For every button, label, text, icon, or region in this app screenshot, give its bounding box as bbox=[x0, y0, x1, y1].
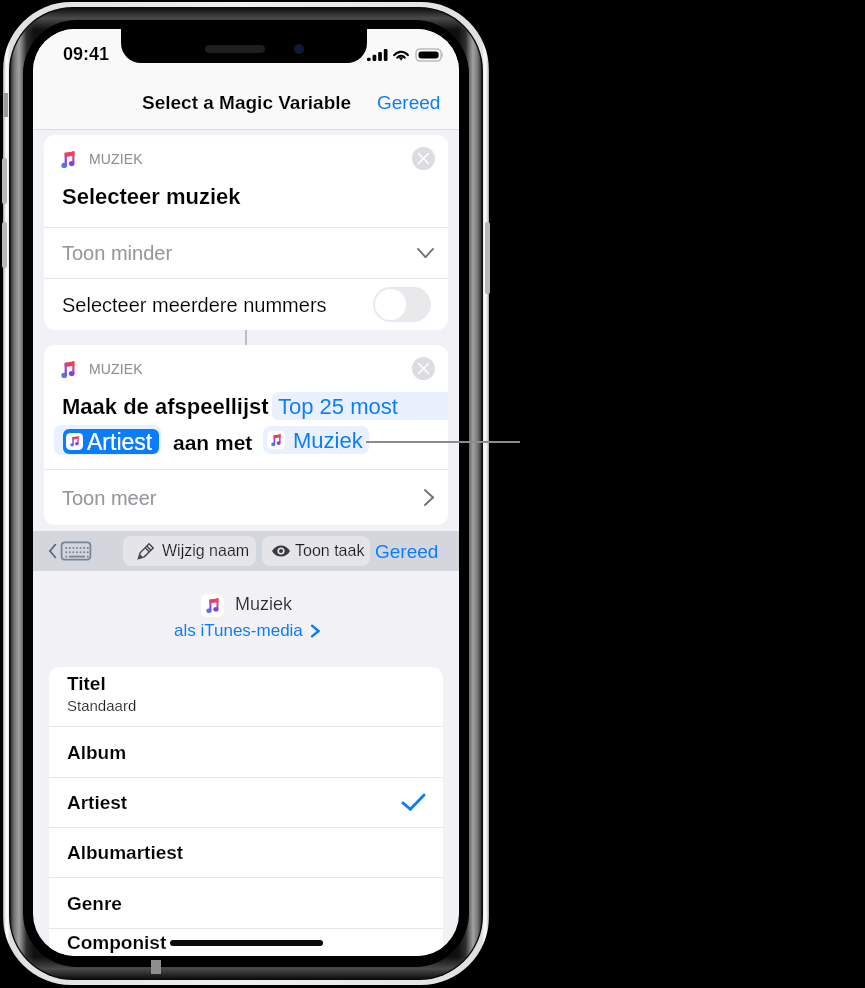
button[interactable]: Componist bbox=[49, 929, 443, 956]
staticText: als iTunes-media bbox=[174, 621, 303, 640]
staticText: Toon minder bbox=[62, 242, 173, 264]
button[interactable]: Gereed bbox=[377, 92, 441, 113]
button[interactable]: Schakelaar bbox=[373, 287, 431, 322]
staticText: Toon taak bbox=[295, 542, 365, 560]
staticText: Titel bbox=[67, 673, 106, 694]
staticText: Gereed bbox=[377, 92, 441, 113]
other: Geselecteerd bbox=[402, 794, 425, 811]
staticText: Artiest bbox=[87, 429, 153, 454]
staticText: Toon meer bbox=[62, 487, 157, 509]
button[interactable]: Artiest bbox=[49, 778, 443, 827]
button[interactable]: Titel bbox=[49, 667, 443, 726]
staticText: Albumartiest bbox=[67, 842, 184, 863]
staticText: Muziek bbox=[235, 594, 293, 614]
button[interactable] bbox=[272, 392, 448, 420]
staticText: aan met bbox=[173, 431, 253, 454]
button[interactable]: Muziek bbox=[263, 426, 369, 454]
staticText: Gereed bbox=[375, 541, 439, 562]
staticText: Album bbox=[67, 742, 127, 763]
button[interactable]: Toon minder bbox=[44, 228, 448, 278]
staticText: Genre bbox=[67, 893, 122, 914]
button[interactable]: Artiest bbox=[63, 429, 159, 454]
button[interactable]: Toon meer bbox=[44, 470, 448, 525]
button[interactable]: Toon taak bbox=[262, 536, 370, 566]
staticText: Top 25 most bbox=[278, 394, 398, 419]
staticText: Muziek bbox=[293, 428, 363, 453]
staticText: Wijzig naam bbox=[162, 542, 250, 560]
staticText: Artiest bbox=[67, 792, 128, 813]
button[interactable]: Genre bbox=[49, 878, 443, 928]
other: Toon minder bbox=[417, 248, 434, 258]
button[interactable]: Sluiten bbox=[412, 147, 435, 170]
button[interactable]: als iTunes-media bbox=[174, 621, 320, 640]
other: Toon meer bbox=[424, 489, 434, 506]
staticText: 09:41 bbox=[63, 44, 110, 64]
staticText: MUZIEK bbox=[89, 361, 143, 377]
staticText: Select a Magic Variable bbox=[142, 92, 352, 113]
staticText: Selecteer meerdere nummers bbox=[62, 294, 327, 316]
button[interactable]: Toetsenbord bbox=[49, 542, 91, 560]
staticText: Componist bbox=[67, 932, 167, 953]
button[interactable]: Gereed bbox=[375, 541, 439, 562]
button[interactable]: Sluiten bbox=[412, 357, 435, 380]
button[interactable]: Wijzig naam bbox=[123, 536, 256, 566]
button[interactable]: Albumartiest bbox=[49, 828, 443, 877]
staticText: Selecteer muziek bbox=[62, 184, 241, 209]
staticText: Maak de afspeellijst bbox=[62, 394, 269, 419]
staticText: MUZIEK bbox=[89, 151, 143, 167]
staticText: Standaard bbox=[67, 697, 137, 714]
button[interactable]: Album bbox=[49, 727, 443, 777]
